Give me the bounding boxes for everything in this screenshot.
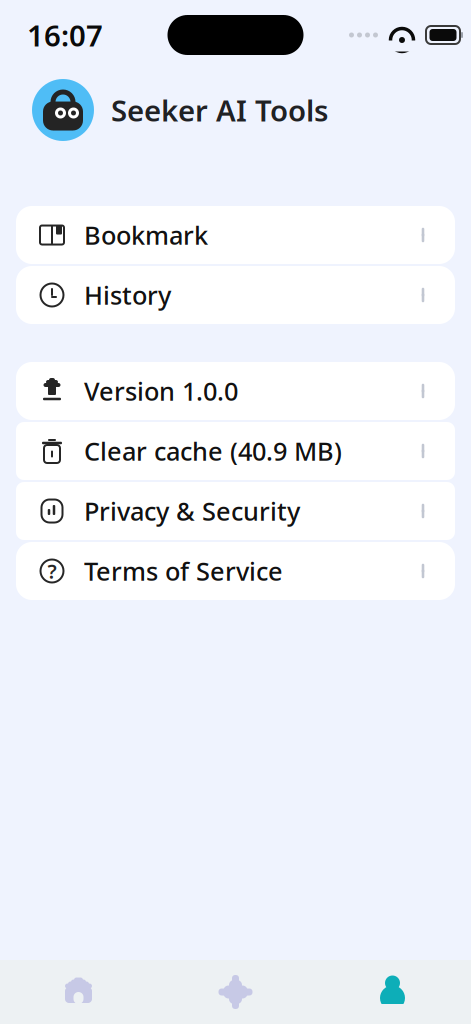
staticText: ?	[47, 558, 56, 584]
staticText: Clear cache (40.9 MB)	[84, 434, 342, 468]
staticText: Terms of Service	[84, 554, 283, 588]
button[interactable]: Bookmark	[16, 206, 455, 264]
staticText: Privacy & Security	[84, 494, 300, 528]
button[interactable]: Version 1.0.0	[16, 362, 455, 420]
button[interactable]: Profile	[314, 960, 471, 1024]
staticText: Seeker AI Tools	[111, 90, 328, 129]
button[interactable]: Clear cache (40.9 MB)	[16, 422, 455, 480]
staticText: History	[84, 278, 171, 312]
button[interactable]: Home	[0, 960, 157, 1024]
staticText: Version 1.0.0	[84, 374, 238, 408]
staticText: 16:07	[27, 15, 103, 54]
button[interactable]: AI Assistant	[157, 960, 314, 1024]
staticText: Bookmark	[84, 218, 208, 252]
button[interactable]: ?	[16, 542, 455, 600]
button[interactable]: History	[16, 266, 455, 324]
button[interactable]: Privacy & Security	[16, 482, 455, 540]
